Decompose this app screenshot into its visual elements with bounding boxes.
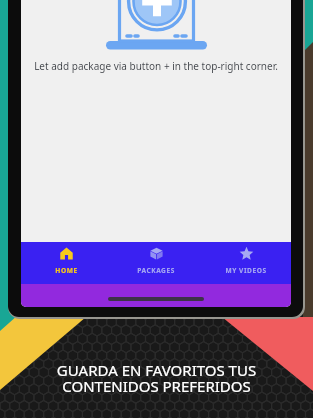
staticText: PACKAGES <box>137 266 175 275</box>
staticText: Let add package via button + in the top-… <box>21 59 291 73</box>
button[interactable]: PACKAGES <box>111 242 201 275</box>
button[interactable]: HOME <box>21 242 111 275</box>
staticText: MY VIDEOS <box>225 266 267 275</box>
staticText: CONTENIDOS PREFERIDOS <box>0 376 313 396</box>
button[interactable]: MY VIDEOS <box>201 242 291 275</box>
staticText: GUARDA EN FAVORITOS TUS <box>0 360 313 380</box>
staticText: HOME <box>55 266 78 275</box>
